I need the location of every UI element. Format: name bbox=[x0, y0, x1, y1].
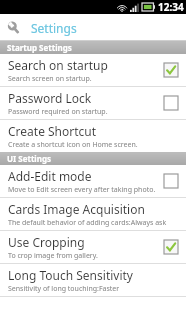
button[interactable]: Checked bbox=[163, 62, 179, 78]
button[interactable]: Add-Edit mode bbox=[0, 165, 186, 197]
staticText: Search on startup bbox=[8, 57, 108, 73]
button[interactable]: Unchecked bbox=[163, 95, 179, 111]
staticText: 12:34 bbox=[158, 0, 184, 14]
staticText: Long Touch Sensitivity bbox=[8, 267, 133, 283]
staticText: Cards Image Acquisition bbox=[8, 201, 145, 217]
button[interactable]: Use Cropping bbox=[0, 231, 186, 263]
staticText: Password Lock bbox=[8, 90, 92, 106]
button[interactable]: Search on startup bbox=[0, 54, 186, 86]
staticText: Search screen on startup. bbox=[8, 74, 92, 84]
staticText: Startup Settings bbox=[7, 42, 72, 53]
staticText: Password required on startup. bbox=[8, 107, 108, 117]
staticText: Move to Edit screen every after taking p… bbox=[8, 185, 156, 195]
button[interactable]: Password Lock bbox=[0, 87, 186, 119]
button[interactable]: Cards Image Acquisition bbox=[0, 198, 186, 230]
staticText: Create a shortcut icon on Home screen. bbox=[8, 140, 138, 150]
staticText: The default behavior of adding cards:Alw… bbox=[8, 218, 167, 228]
staticText: Create Shortcut bbox=[8, 123, 97, 139]
staticText: To crop image from gallery. bbox=[8, 251, 98, 261]
staticText: Sensitivity of long touching:Faster bbox=[8, 284, 120, 294]
staticText: Add-Edit mode bbox=[8, 168, 92, 184]
button[interactable]: Create Shortcut bbox=[0, 120, 186, 152]
staticText: Settings bbox=[31, 20, 77, 36]
button[interactable]: Checked bbox=[163, 239, 179, 255]
button[interactable]: Unchecked bbox=[163, 173, 179, 189]
button[interactable]: Long Touch Sensitivity bbox=[0, 264, 186, 296]
staticText: UI Settings bbox=[7, 153, 52, 164]
staticText: Use Cropping bbox=[8, 234, 85, 250]
